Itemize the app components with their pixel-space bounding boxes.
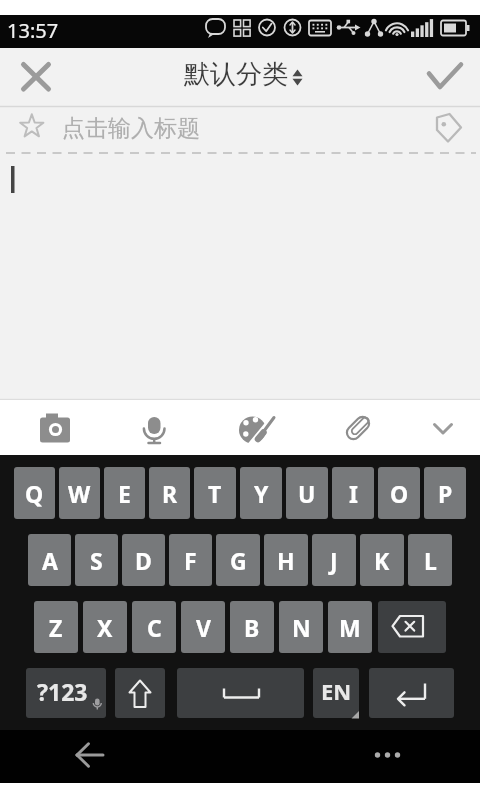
button[interactable] (10, 50, 66, 104)
staticText: E (118, 478, 131, 509)
staticText: R (162, 478, 178, 509)
button[interactable] (31, 404, 79, 452)
button[interactable] (66, 731, 114, 779)
button[interactable]: EN (313, 668, 359, 718)
staticText: L (424, 545, 437, 576)
button[interactable]: C (132, 601, 176, 653)
button[interactable] (12, 106, 54, 148)
button[interactable]: P (424, 467, 466, 519)
staticText: D (135, 545, 152, 576)
button[interactable] (369, 668, 454, 718)
button[interactable]: N (279, 601, 323, 653)
button[interactable]: 点击输入标题 (0, 107, 480, 152)
button[interactable]: E (104, 467, 145, 519)
staticText: Z (49, 612, 63, 643)
button[interactable] (0, 152, 480, 399)
button[interactable] (378, 601, 446, 653)
staticText: C (147, 612, 162, 643)
staticText: G (230, 545, 247, 576)
staticText: K (374, 545, 390, 576)
button[interactable]: X (83, 601, 127, 653)
button[interactable]: M (328, 601, 372, 653)
button[interactable]: A (28, 534, 71, 586)
button[interactable]: 默认分类 (184, 58, 288, 91)
button[interactable]: B (230, 601, 274, 653)
button[interactable]: H (264, 534, 308, 586)
button[interactable] (419, 404, 467, 452)
button[interactable]: J (312, 534, 356, 586)
staticText: Y (254, 478, 269, 509)
staticText: B (244, 612, 260, 643)
staticText: P (438, 478, 453, 509)
button[interactable]: ?123 (26, 668, 106, 718)
staticText: T (208, 478, 222, 509)
staticText: I (349, 478, 358, 509)
button[interactable] (177, 668, 304, 718)
button[interactable]: O (378, 467, 420, 519)
staticText: 点击输入标题 (62, 114, 200, 143)
button[interactable]: V (181, 601, 225, 653)
staticText: EN (321, 676, 352, 706)
button[interactable]: Y (240, 467, 282, 519)
button[interactable]: S (75, 534, 118, 586)
button[interactable] (363, 731, 411, 779)
button[interactable]: W (59, 467, 100, 519)
staticText: U (298, 478, 316, 509)
staticText: W (68, 478, 91, 509)
button[interactable]: I (332, 467, 374, 519)
staticText: 13:57 (7, 17, 59, 44)
button[interactable] (229, 404, 277, 452)
button[interactable] (416, 50, 474, 104)
button[interactable]: U (286, 467, 328, 519)
staticText: H (277, 545, 295, 576)
button[interactable]: G (216, 534, 260, 586)
staticText: N (292, 612, 311, 643)
button[interactable] (130, 404, 178, 452)
staticText: Q (25, 478, 44, 509)
button[interactable]: L (408, 534, 452, 586)
button[interactable]: F (169, 534, 212, 586)
staticText: ?123 (37, 676, 88, 707)
staticText: M (339, 612, 361, 643)
button[interactable]: T (194, 467, 236, 519)
button[interactable]: K (360, 534, 404, 586)
staticText: O (390, 478, 409, 509)
button[interactable] (334, 404, 382, 452)
staticText: S (90, 545, 103, 576)
button[interactable]: Q (14, 467, 55, 519)
staticText: 默认分类 (184, 58, 288, 91)
staticText: J (330, 545, 338, 576)
staticText: X (97, 612, 113, 643)
staticText: F (184, 545, 197, 576)
staticText: V (196, 612, 211, 643)
button[interactable]: Z (34, 601, 78, 653)
button[interactable] (115, 668, 165, 718)
staticText: A (42, 545, 58, 576)
button[interactable] (428, 106, 472, 150)
button[interactable]: R (149, 467, 190, 519)
button[interactable]: D (122, 534, 165, 586)
